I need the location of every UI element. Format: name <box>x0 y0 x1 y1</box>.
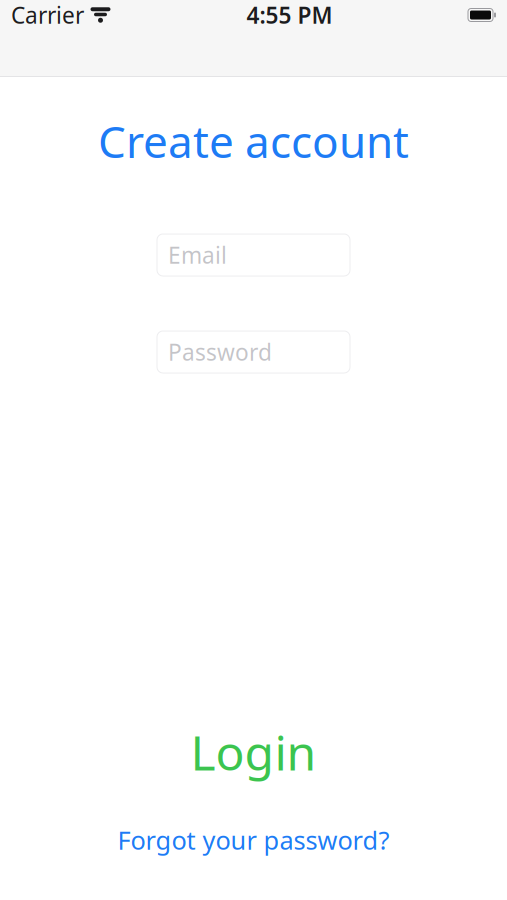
staticText: 4:55 PM <box>246 0 332 30</box>
staticText: Password <box>168 337 272 367</box>
staticText: Carrier <box>11 0 84 30</box>
staticText: Forgot your password? <box>117 823 389 857</box>
button[interactable]: Forgot your password? <box>0 827 507 853</box>
staticText: Login <box>190 720 316 784</box>
staticText: Email <box>168 240 227 270</box>
button[interactable]: Login <box>0 728 507 776</box>
staticText: Create account <box>98 112 409 170</box>
